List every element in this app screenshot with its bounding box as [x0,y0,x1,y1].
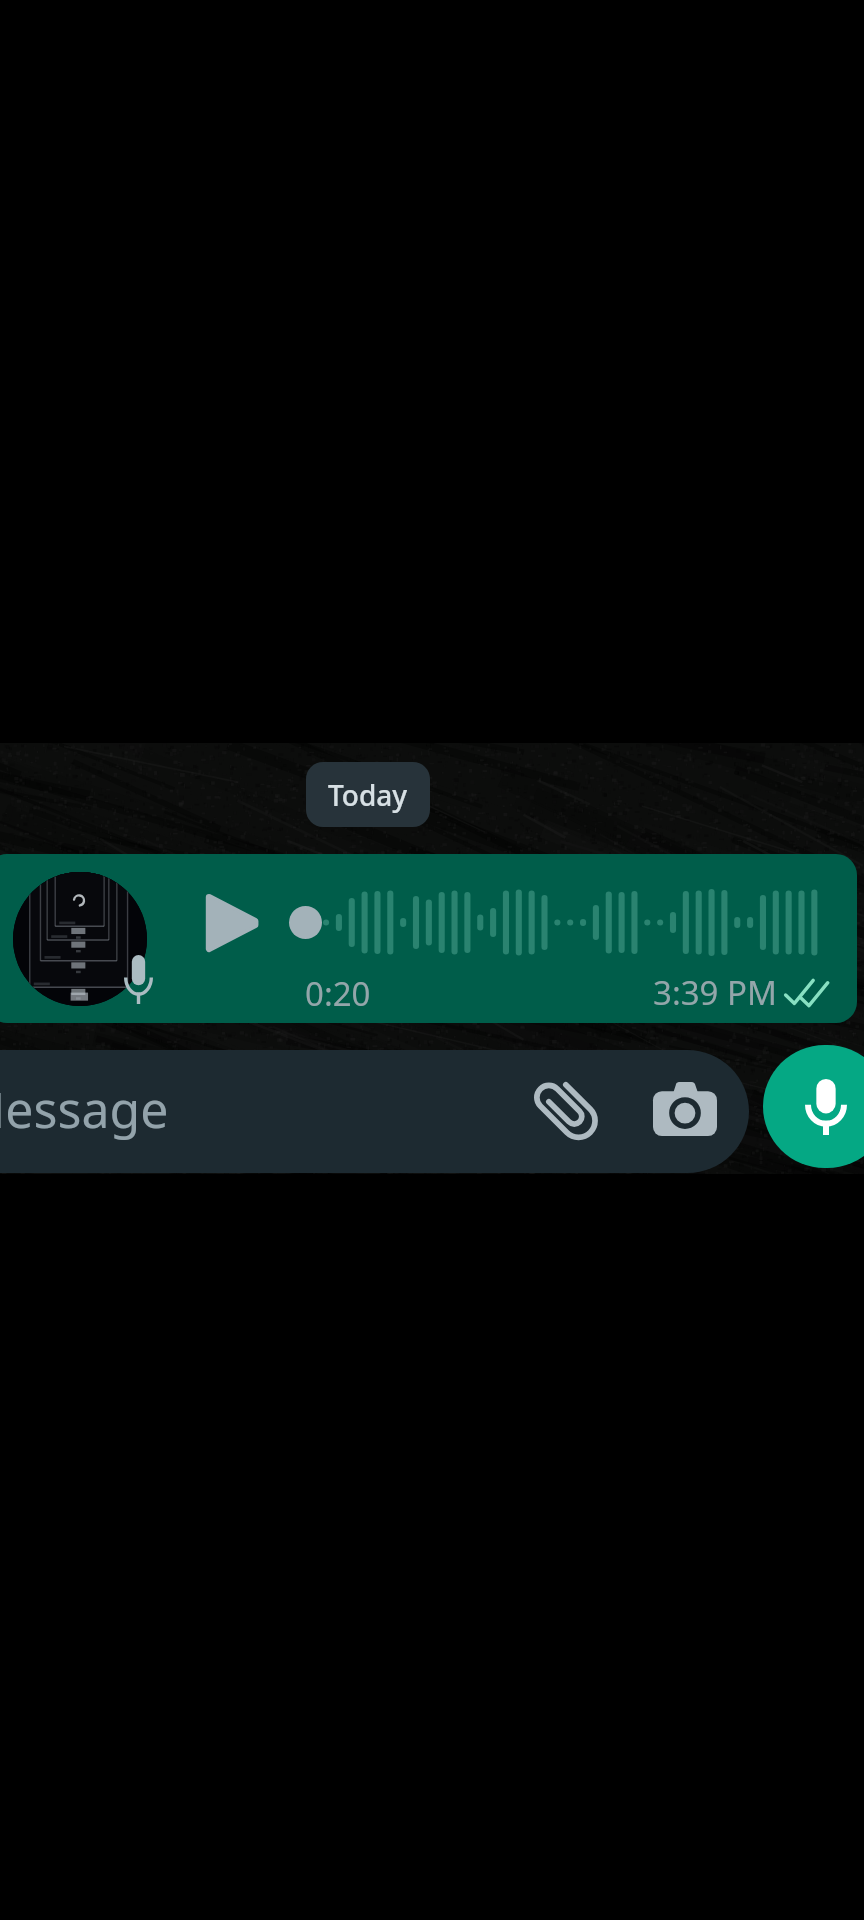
button[interactable]: Record voice message [763,1045,864,1168]
staticText: Today [328,776,408,814]
button[interactable]: Play [0,854,864,1023]
other: Camera [653,1082,717,1136]
button[interactable]: Message [0,1050,864,1173]
other: Play [209,894,261,952]
staticText: 0:20 [305,971,371,1016]
staticText: Message [0,1075,169,1143]
other: Attach [533,1074,605,1140]
button[interactable]: Today [306,762,430,827]
staticText: 3:39 PM [653,970,777,1015]
